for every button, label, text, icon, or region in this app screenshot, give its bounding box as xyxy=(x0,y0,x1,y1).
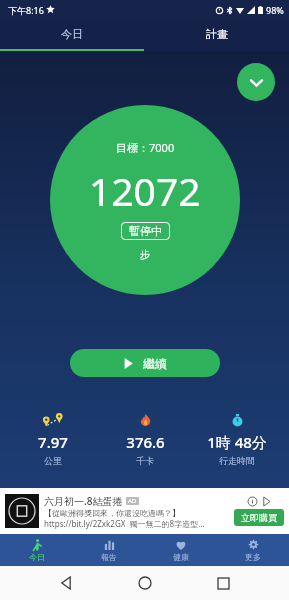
staticText: 六月初一.8結蛋捲 xyxy=(44,494,123,508)
button[interactable]: 更多 xyxy=(217,534,289,566)
staticText: 98% xyxy=(266,4,284,16)
staticText: 下午8:16 xyxy=(8,4,44,16)
staticText: 報告 xyxy=(101,552,117,562)
staticText: 376.6 xyxy=(126,432,165,452)
staticText: 今日 xyxy=(61,27,83,41)
button[interactable]: Home xyxy=(132,570,158,596)
button[interactable]: Collapse xyxy=(237,63,275,101)
staticText: 健康 xyxy=(173,552,189,562)
button[interactable]: 目標：7000 xyxy=(50,105,240,295)
staticText: 【從歐洲得獎回來，你還沒吃過嗎？】 xyxy=(44,508,180,518)
staticText: 更多 xyxy=(245,552,261,562)
button[interactable]: 健康 xyxy=(145,534,217,566)
button[interactable]: 六月初一.8結蛋捲 xyxy=(5,492,284,530)
staticText: 公里 xyxy=(44,455,62,466)
button[interactable]: 繼續 xyxy=(70,349,220,377)
button[interactable]: 立即購買 xyxy=(234,509,284,526)
staticText: AD xyxy=(128,497,137,505)
other: Ad info xyxy=(248,497,257,506)
staticText: 千卡 xyxy=(136,455,154,466)
staticText: 1時 48分 xyxy=(207,432,267,452)
staticText: 立即購買 xyxy=(241,512,277,523)
staticText: 行走時間 xyxy=(219,455,255,466)
button[interactable]: 今日 xyxy=(0,534,73,566)
staticText: 計畫 xyxy=(206,27,228,41)
staticText: 步 xyxy=(140,248,150,261)
staticText: 今日 xyxy=(29,552,45,562)
staticText: 12072 xyxy=(89,164,201,217)
staticText: 繼續 xyxy=(143,356,167,371)
button[interactable]: 7.97 xyxy=(6,410,99,468)
staticText: 目標：7000 xyxy=(116,140,175,155)
other: Close ad xyxy=(262,497,271,506)
staticText: 7.97 xyxy=(38,432,68,452)
button[interactable]: Back xyxy=(53,570,79,596)
staticText: https://bit.ly/2Zxk2GX 獨一無二的8字造型... xyxy=(44,518,205,529)
button[interactable]: 報告 xyxy=(73,534,145,566)
button[interactable]: 1時 48分 xyxy=(191,410,283,468)
button[interactable]: Recents xyxy=(210,570,236,596)
staticText: 暫停中 xyxy=(129,224,162,238)
button[interactable]: 計畫 xyxy=(144,19,289,49)
button[interactable]: 376.6 xyxy=(99,410,191,468)
button[interactable]: 今日 xyxy=(0,19,144,49)
